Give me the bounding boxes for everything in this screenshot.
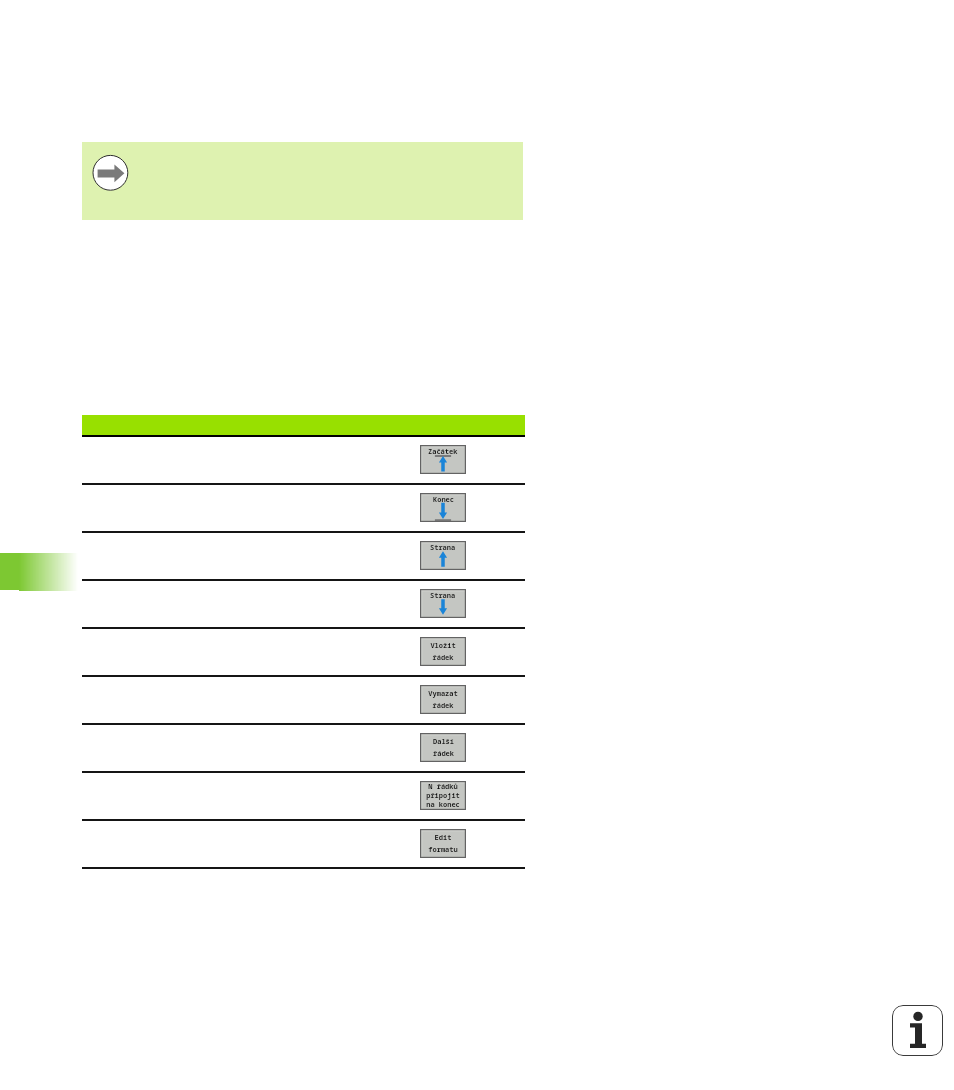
button[interactable]: Strana (420, 541, 466, 570)
other: Note (90, 153, 130, 193)
button[interactable]: N řádků připojit na konec (420, 781, 466, 810)
button[interactable]: Strana (420, 589, 466, 618)
button[interactable]: Vložit řádek (420, 637, 466, 666)
staticText: Edit formatu (428, 833, 458, 854)
staticText: Další řádek (433, 737, 454, 758)
staticText: Vložit řádek (430, 641, 456, 662)
button[interactable]: Information (892, 1005, 943, 1056)
staticText: Začátek (428, 447, 458, 457)
staticText: N řádků připojit na konec (426, 782, 460, 809)
button[interactable]: Konec (420, 493, 466, 522)
staticText: Konec (433, 495, 454, 505)
button[interactable]: Další řádek (420, 733, 466, 762)
staticText: Strana (430, 591, 456, 601)
button[interactable]: Note (82, 142, 523, 220)
button[interactable]: Edit formatu (420, 829, 466, 858)
staticText: Strana (430, 543, 456, 553)
button[interactable]: Začátek (420, 445, 466, 474)
staticText: Vymazat řádek (428, 689, 458, 710)
button[interactable]: Vymazat řádek (420, 685, 466, 714)
